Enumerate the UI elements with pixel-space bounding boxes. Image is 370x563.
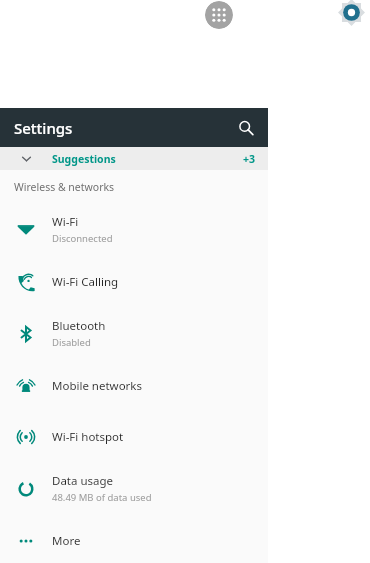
button[interactable]: Settings app [338,0,365,26]
staticText: Disabled [52,336,91,349]
staticText: Wireless & networks [14,180,115,194]
button[interactable]: Mobile networks [0,360,268,411]
staticText: Mobile networks [52,378,143,394]
button[interactable]: Wi-Fi hotspot [0,411,268,462]
button[interactable]: Search [233,115,259,141]
button[interactable]: More [0,515,268,563]
staticText: Data usage [52,473,114,489]
staticText: Disconnected [52,232,113,245]
staticText: 48.49 MB of data used [52,491,152,504]
staticText: Wi-Fi Calling [52,274,119,290]
button[interactable]: Bluetooth [0,307,268,360]
button[interactable]: Wi-Fi Calling [0,256,268,307]
staticText: Wi-Fi hotspot [52,429,124,445]
staticText: More [52,533,81,549]
staticText: +3 [243,152,256,166]
button[interactable]: Suggestions [0,147,268,170]
staticText: Bluetooth [52,318,106,334]
button[interactable]: Apps [205,1,233,29]
button[interactable]: Data usage [0,462,268,515]
button[interactable]: Wi-Fi [0,203,268,256]
staticText: Wi-Fi [52,214,79,230]
staticText: Settings [14,118,73,138]
staticText: Suggestions [52,152,116,166]
